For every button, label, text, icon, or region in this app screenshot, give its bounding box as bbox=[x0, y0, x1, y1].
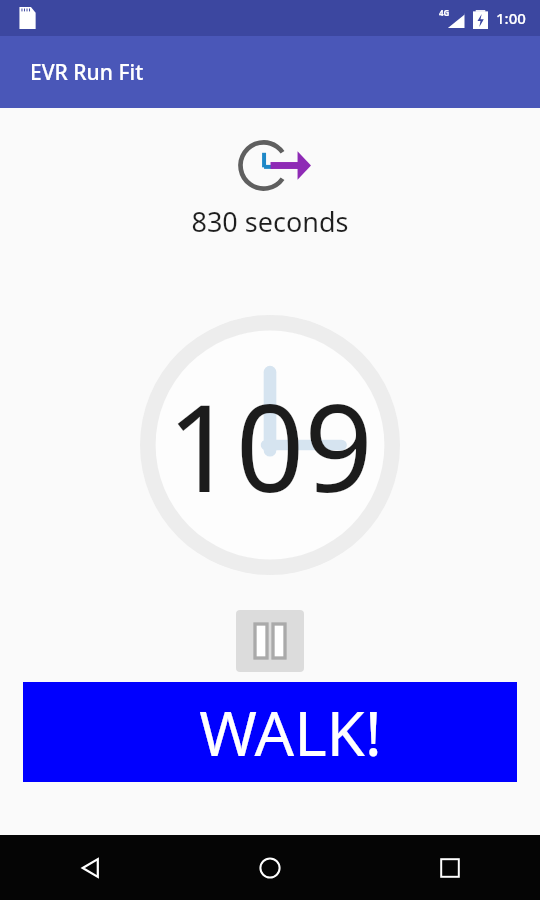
button[interactable]: Recent apps bbox=[360, 835, 540, 900]
staticText: 109 bbox=[167, 364, 373, 527]
button[interactable]: Back bbox=[0, 835, 180, 900]
button[interactable]: WALK! bbox=[23, 682, 517, 782]
staticText: 830 seconds bbox=[191, 203, 349, 240]
staticText: 4G bbox=[439, 7, 450, 18]
staticText: 1:00 bbox=[496, 8, 526, 28]
staticText: EVR Run Fit bbox=[30, 58, 144, 87]
button[interactable]: Pause bbox=[236, 610, 304, 672]
staticText: WALK! bbox=[199, 690, 382, 774]
button[interactable]: Home bbox=[180, 835, 360, 900]
